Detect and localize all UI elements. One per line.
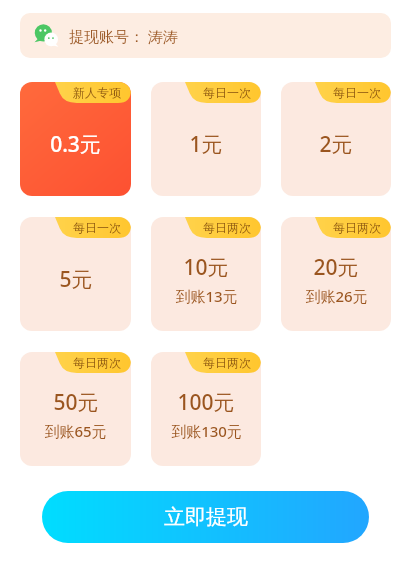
button[interactable]: 每日两次 [281,217,391,331]
staticText: 1元 [189,130,223,159]
button[interactable]: 每日两次 [151,352,261,466]
staticText: 立即提现 [164,504,248,530]
staticText: 10元 [183,253,229,282]
staticText: 到账65元 [44,421,107,441]
button[interactable]: 每日一次 [281,82,391,196]
button[interactable]: 每日一次 [20,217,131,331]
staticText: 每日一次 [333,85,381,100]
staticText: 0.3元 [50,130,101,159]
staticText: 100元 [177,388,235,417]
other: WeChat [34,23,60,49]
staticText: 提现账号： 涛涛 [69,26,178,46]
staticText: 5元 [59,265,93,294]
staticText: 2元 [319,130,353,159]
staticText: 50元 [53,388,99,417]
button[interactable]: WeChat [20,13,391,58]
staticText: 每日两次 [73,355,121,370]
staticText: 20元 [313,253,359,282]
staticText: 到账130元 [171,421,242,441]
button[interactable]: 每日两次 [20,352,131,466]
staticText: 到账13元 [175,286,238,306]
button[interactable]: 每日两次 [151,217,261,331]
button[interactable]: 立即提现 [42,491,369,543]
button[interactable]: 每日一次 [151,82,261,196]
staticText: 到账26元 [305,286,368,306]
button[interactable]: 新人专项 [20,82,131,196]
staticText: 新人专项 [73,85,121,100]
staticText: 每日两次 [203,220,251,235]
staticText: 每日两次 [333,220,381,235]
staticText: 每日一次 [203,85,251,100]
staticText: 每日一次 [73,220,121,235]
staticText: 每日两次 [203,355,251,370]
